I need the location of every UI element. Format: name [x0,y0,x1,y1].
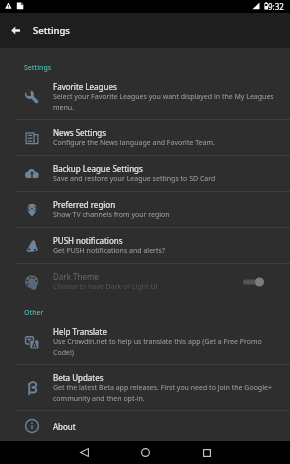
button[interactable]: Beta Updates [0,365,290,410]
button[interactable]: News Settings [0,120,290,155]
staticText: Backup League Settings [53,163,143,174]
button[interactable]: Preferred region [0,192,290,227]
staticText: Get the latest Beta app releases. First … [53,383,279,403]
staticText: Favorite Leagues [53,81,117,92]
staticText: Settings [24,63,52,73]
staticText: Configure the News language and Favorite… [53,138,215,148]
staticText: Use Crowdin.net to help us translate thi… [53,337,279,357]
staticText: About [53,421,76,432]
button[interactable]: PUSH notifications [0,228,290,263]
button[interactable]: Backup League Settings [0,156,290,191]
button[interactable]: Help Translate [0,319,290,364]
button[interactable]: About [0,411,290,441]
button[interactable]: Favorite Leagues [0,74,290,119]
staticText: Save and restore your League settings to… [53,174,216,184]
button[interactable]: Navigate up [0,13,31,48]
staticText: Select your Favorite Leagues you want di… [53,92,279,112]
button[interactable]: Dark Theme toggle [243,274,279,290]
staticText: Beta Updates [53,372,104,383]
button[interactable]: Recent apps [195,441,218,464]
staticText: PUSH notifications [53,235,123,246]
staticText: Choose to have Dark or Light UI [53,282,158,292]
staticText: News Settings [53,127,107,138]
staticText: Other [24,308,44,318]
staticText: Get PUSH notifications and alerts? [53,246,165,256]
staticText: Show TV channels from your region [53,210,170,220]
staticText: Preferred region [53,199,116,210]
button[interactable]: Home [134,441,157,464]
staticText: Settings [33,24,70,37]
staticText: Help Translate [53,326,107,337]
staticText: 9:32 [268,1,284,12]
button[interactable]: Dark Theme [0,264,290,299]
button[interactable]: Back [73,441,96,464]
staticText: Dark Theme [53,271,99,282]
